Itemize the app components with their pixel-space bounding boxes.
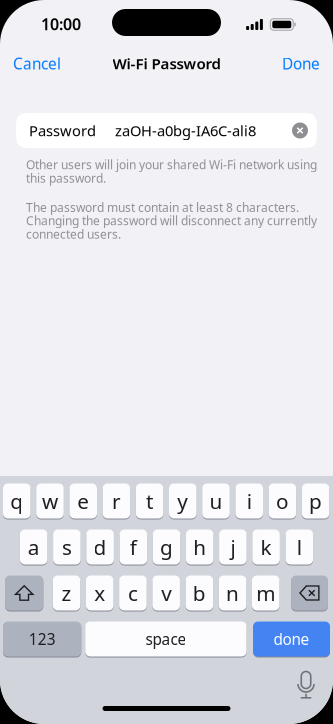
staticText: j — [230, 533, 235, 561]
button[interactable]: c — [119, 575, 147, 610]
button[interactable]: i — [235, 483, 263, 518]
staticText: q — [10, 487, 23, 515]
button[interactable]: z — [53, 575, 80, 610]
staticText: e — [77, 487, 89, 515]
staticText: zaOH-a0bg-IA6C-ali8 — [115, 120, 256, 140]
staticText: b — [193, 579, 206, 607]
staticText: Other users will join your shared Wi-Fi … — [26, 156, 317, 186]
staticText: z — [61, 579, 71, 607]
staticText: y — [177, 487, 188, 515]
button[interactable]: r — [103, 483, 130, 518]
button[interactable]: o — [269, 483, 296, 518]
button[interactable]: k — [252, 529, 280, 564]
button[interactable]: 123 — [3, 621, 81, 656]
staticText: m — [256, 579, 275, 607]
staticText: Done — [282, 53, 320, 74]
staticText: 123 — [29, 629, 56, 649]
staticText: u — [209, 487, 222, 515]
button[interactable]: n — [219, 575, 246, 610]
button[interactable]: m — [252, 575, 279, 610]
staticText: v — [161, 579, 171, 607]
button[interactable]: space — [85, 621, 247, 656]
button[interactable]: Shift — [5, 575, 43, 610]
staticText: i — [247, 487, 252, 515]
staticText: h — [193, 533, 206, 561]
staticText: Wi-Fi Password — [112, 53, 220, 74]
staticText: k — [261, 533, 272, 561]
staticText: a — [28, 533, 40, 561]
button[interactable]: d — [86, 529, 114, 564]
button[interactable]: y — [169, 483, 197, 518]
button[interactable]: g — [153, 529, 180, 564]
staticText: space — [145, 629, 186, 649]
staticText: d — [94, 533, 107, 561]
staticText: g — [160, 533, 173, 561]
button[interactable]: b — [185, 575, 213, 610]
staticText: t — [146, 487, 153, 515]
button[interactable]: j — [219, 529, 247, 564]
staticText: r — [112, 487, 121, 515]
button[interactable]: w — [36, 483, 64, 518]
button[interactable]: s — [53, 529, 81, 564]
staticText: Password — [29, 120, 96, 140]
staticText: o — [276, 487, 289, 515]
button[interactable]: Dictate — [292, 669, 320, 701]
button[interactable]: t — [136, 483, 163, 518]
button[interactable]: Done — [277, 46, 325, 81]
staticText: c — [128, 579, 138, 607]
staticText: done — [274, 629, 310, 649]
button[interactable]: Delete — [291, 575, 328, 610]
button[interactable]: a — [20, 529, 47, 564]
button[interactable]: q — [3, 483, 31, 518]
button[interactable]: Clear text — [289, 119, 311, 141]
button[interactable]: done — [253, 621, 330, 656]
button[interactable]: u — [202, 483, 230, 518]
staticText: 10:00 — [41, 13, 81, 35]
button[interactable]: p — [302, 483, 329, 518]
staticText: l — [297, 533, 302, 561]
button[interactable]: l — [285, 529, 313, 564]
staticText: The password must contain at least 8 cha… — [26, 199, 317, 242]
button[interactable]: v — [152, 575, 180, 610]
button[interactable]: Cancel — [8, 46, 66, 81]
button[interactable]: f — [119, 529, 147, 564]
button[interactable]: h — [186, 529, 213, 564]
staticText: s — [62, 533, 72, 561]
staticText: p — [309, 487, 322, 515]
button[interactable]: e — [69, 483, 97, 518]
staticText: f — [130, 533, 137, 561]
staticText: w — [42, 487, 58, 515]
staticText: n — [226, 579, 239, 607]
staticText: x — [94, 579, 105, 607]
staticText: Cancel — [13, 53, 61, 74]
button[interactable]: x — [86, 575, 113, 610]
